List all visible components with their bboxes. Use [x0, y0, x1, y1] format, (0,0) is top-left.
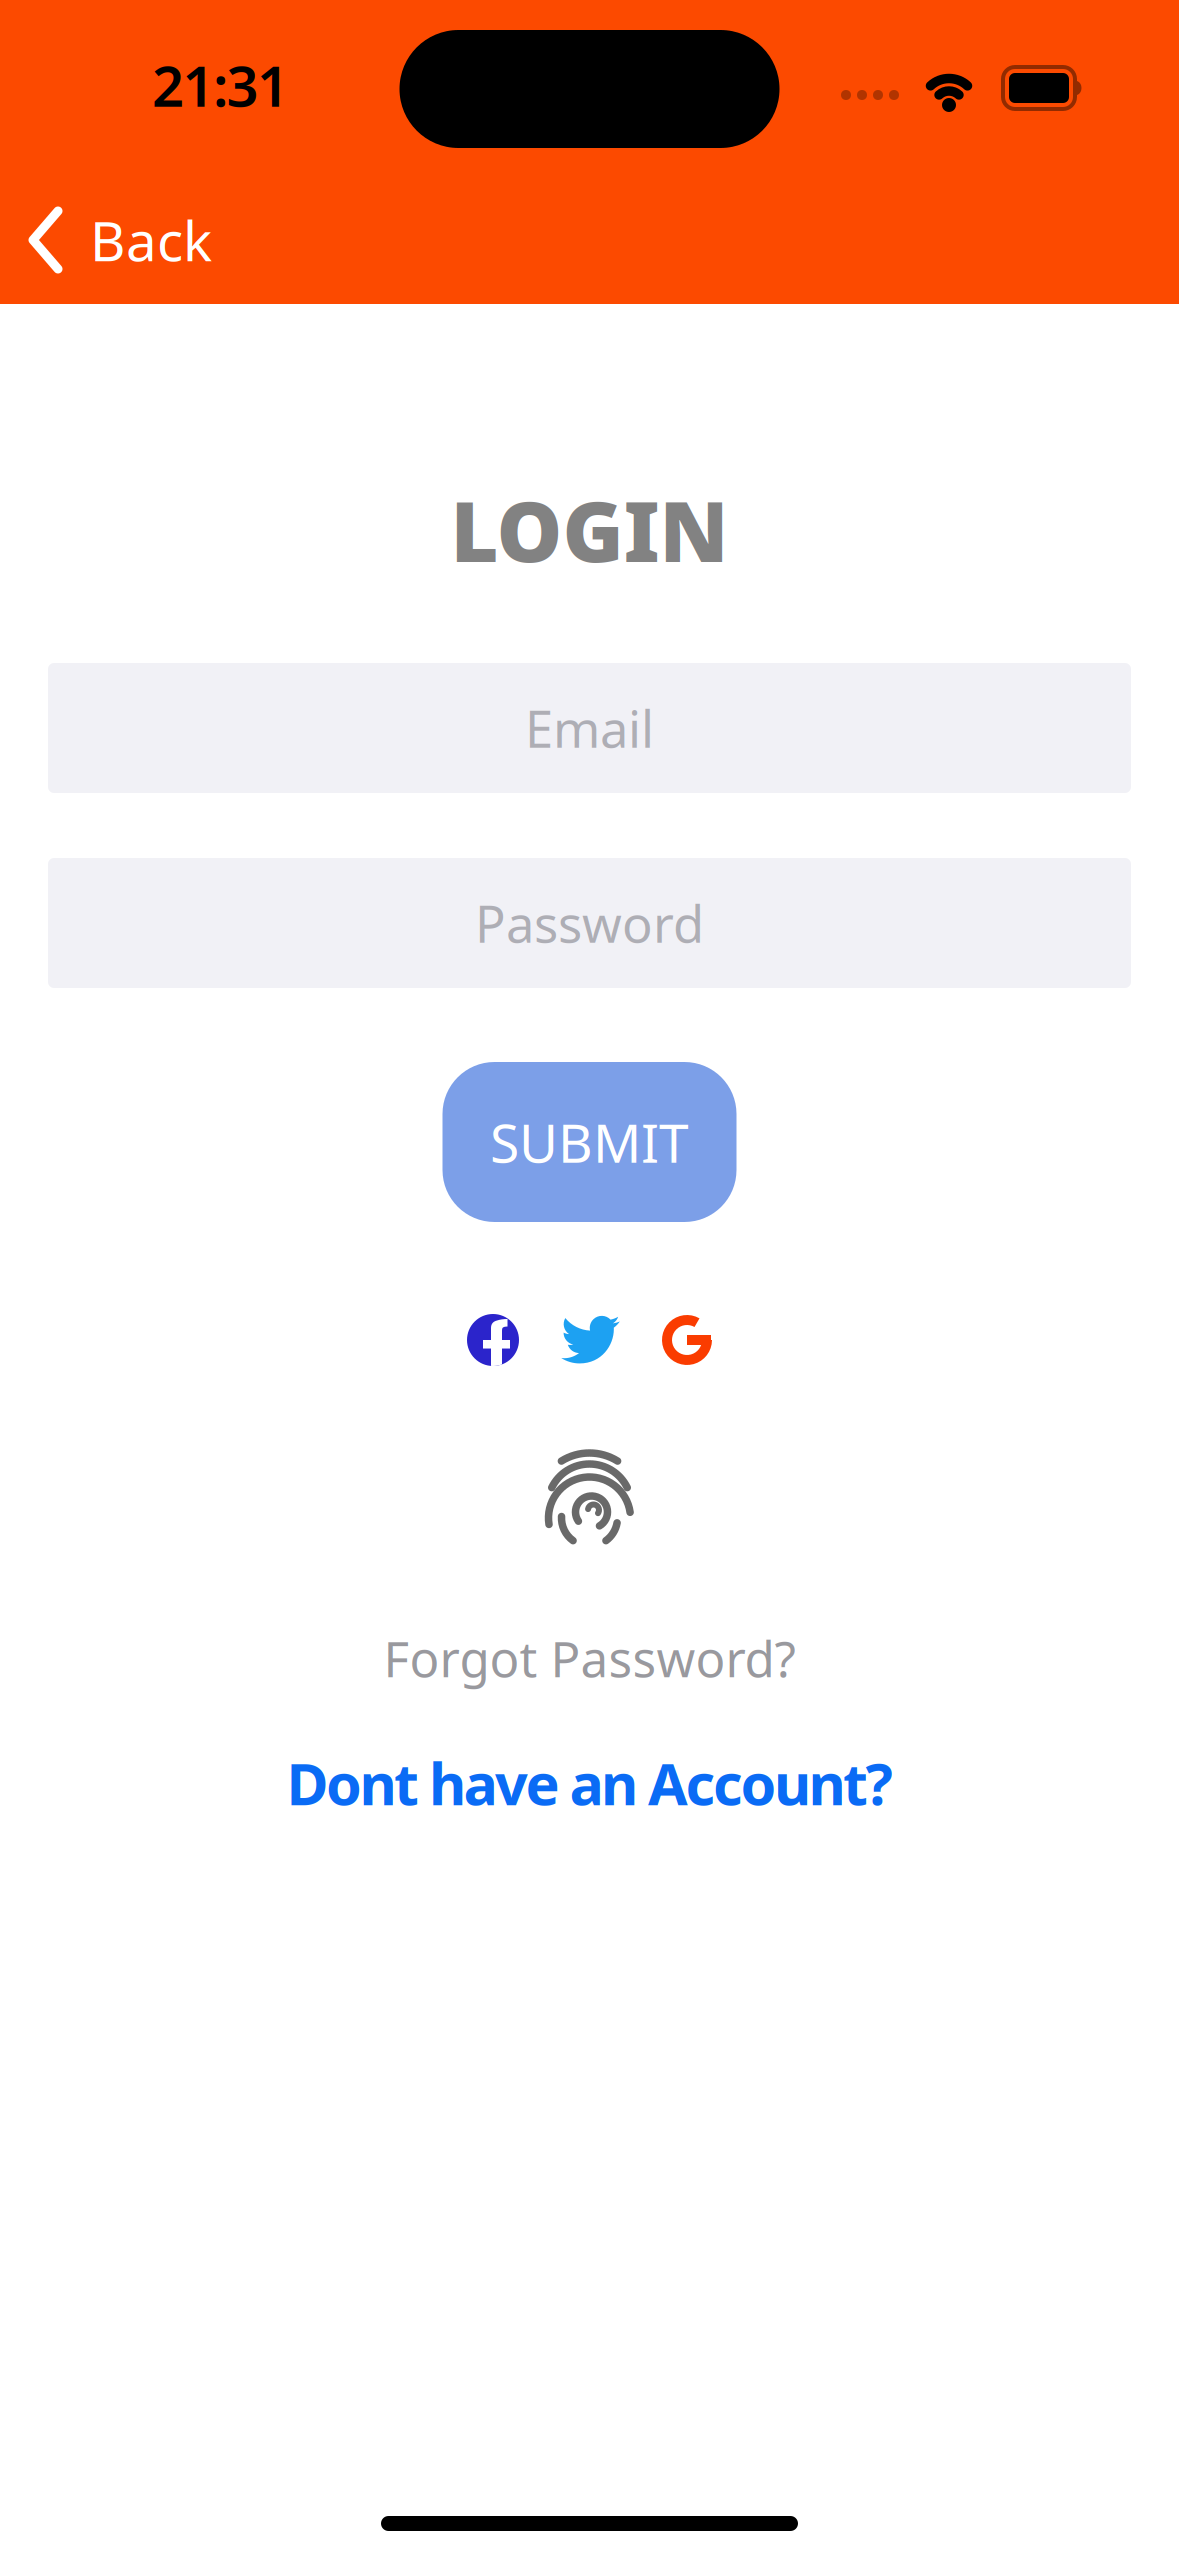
button[interactable]: Back [28, 204, 212, 276]
staticText: Forgot Password? [383, 1625, 795, 1691]
staticText: Dont have an Account? [286, 1745, 892, 1821]
button[interactable] [662, 1315, 712, 1365]
button[interactable] [561, 1315, 620, 1364]
staticText: Email [525, 694, 654, 762]
button[interactable]: Email [48, 663, 1131, 793]
button[interactable] [545, 1449, 633, 1545]
button[interactable] [467, 1314, 519, 1366]
button[interactable]: Password [48, 858, 1131, 988]
button[interactable]: SUBMIT [442, 1062, 736, 1222]
staticText: 21:31 [152, 48, 289, 122]
staticText: Back [90, 204, 212, 276]
staticText: SUBMIT [490, 1107, 689, 1177]
staticText: Password [475, 889, 704, 957]
staticText: LOGIN [450, 475, 728, 585]
button[interactable]: Forgot Password? [383, 1628, 795, 1688]
button[interactable]: Dont have an Account? [286, 1748, 892, 1818]
